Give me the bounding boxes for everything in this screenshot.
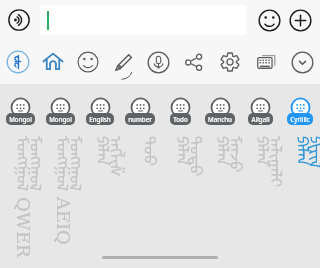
staticText: Todo [173,115,188,123]
staticText: Mongol [49,115,72,123]
staticText: English [89,115,111,123]
button[interactable]: Mongol [40,84,80,130]
button[interactable]: Share [176,40,212,84]
staticText: Manchu [208,115,232,123]
button[interactable]: Emoji [70,40,105,84]
button[interactable]: Voice input [140,40,176,84]
button[interactable]: Emoji [255,6,283,34]
button[interactable]: Mongol [0,84,40,130]
button[interactable]: Todo [160,84,200,130]
button[interactable]: Add [286,6,314,34]
button[interactable]: Settings [212,40,248,84]
button[interactable]: Home [35,40,70,84]
button[interactable]: Collapse [284,40,320,84]
button[interactable]: Voice [4,5,34,35]
button[interactable]: Handwriting [105,40,140,84]
button[interactable]: number [120,84,160,130]
staticText: Cyrillic [290,115,310,123]
staticText: number [128,115,152,123]
button[interactable]: Mongolian keyboard [0,40,35,84]
staticText: Aligali [251,115,270,123]
button[interactable]: Aligali [240,84,280,130]
staticText: Mongol [9,115,32,123]
button[interactable]: English [80,84,120,130]
button[interactable]: Cyrillic [280,84,320,130]
button[interactable]: Manchu [200,84,240,130]
button[interactable] [40,5,246,35]
button[interactable]: Switch keyboard [248,40,284,84]
